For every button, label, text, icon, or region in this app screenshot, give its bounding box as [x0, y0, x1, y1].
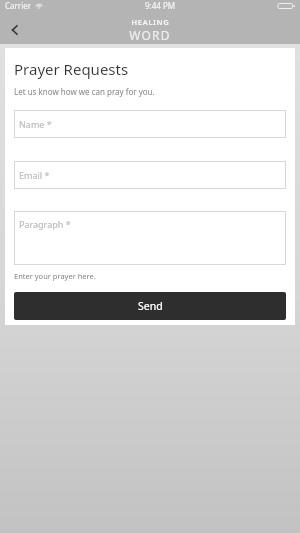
staticText: 9:44 PM — [145, 0, 176, 11]
button[interactable]: Paragraph * — [14, 211, 286, 265]
staticText: WORD — [129, 27, 171, 43]
staticText: Prayer Requests — [14, 59, 129, 79]
button[interactable]: Name * — [14, 110, 286, 138]
staticText: Enter your prayer here. — [14, 271, 96, 281]
staticText: Let us know how we can pray for you. — [14, 86, 155, 97]
staticText: Send — [138, 299, 163, 313]
button[interactable]: Back — [0, 16, 30, 44]
staticText: Carrier — [5, 0, 32, 11]
staticText: Name * — [19, 118, 52, 130]
button[interactable]: Send — [14, 292, 286, 320]
staticText: Email * — [19, 169, 50, 181]
staticText: HEALING — [131, 17, 170, 27]
button[interactable]: Email * — [14, 161, 286, 189]
staticText: Paragraph * — [19, 218, 71, 230]
